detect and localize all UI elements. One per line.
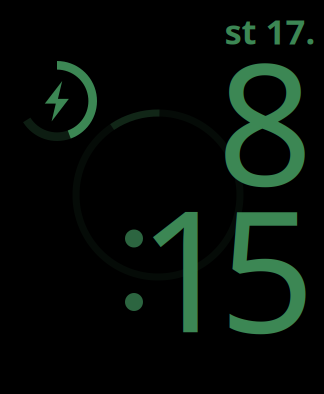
staticText: st 17.: [224, 8, 315, 54]
staticText: 5: [219, 155, 315, 379]
staticText: 1: [138, 155, 234, 379]
staticText: 8: [217, 8, 313, 232]
